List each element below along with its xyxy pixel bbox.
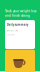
staticText: Daily summary — [7, 23, 28, 26]
staticText: Track your weight loss — [5, 9, 36, 13]
staticText: 2 left — [15, 30, 18, 32]
staticText: and finish strong — [5, 14, 30, 17]
staticText: Keep going — [7, 34, 15, 36]
staticText: On track — [7, 30, 14, 32]
